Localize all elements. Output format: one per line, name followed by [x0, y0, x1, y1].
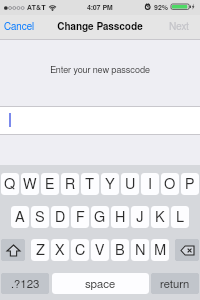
staticText: P [185, 177, 195, 192]
button[interactable]: D [51, 206, 69, 228]
staticText: J [136, 210, 144, 225]
button[interactable]: J [131, 206, 149, 228]
button[interactable]: T [81, 173, 99, 195]
staticText: I [148, 177, 153, 192]
button[interactable]: N [131, 239, 149, 261]
staticText: C [75, 243, 86, 258]
staticText: space [85, 279, 116, 290]
staticText: Z [36, 243, 45, 258]
button[interactable]: P [181, 173, 199, 195]
button[interactable]: space [52, 273, 149, 294]
staticText: D [55, 210, 66, 225]
button[interactable]: V [91, 239, 109, 261]
button[interactable]: W [21, 173, 39, 195]
staticText: E [45, 177, 55, 192]
button[interactable]: Shift [1, 239, 25, 261]
staticText: O [164, 177, 176, 192]
button[interactable]: .?123 [1, 273, 49, 294]
button[interactable]: S [31, 206, 49, 228]
staticText: L [176, 210, 185, 225]
button[interactable]: Z [31, 239, 49, 261]
staticText: return [160, 279, 190, 290]
staticText: X [55, 243, 65, 258]
button[interactable]: Y [101, 173, 119, 195]
staticText: A [15, 210, 25, 225]
button[interactable]: G [91, 206, 109, 228]
button[interactable]: Next [169, 15, 189, 39]
button[interactable]: U [121, 173, 139, 195]
staticText: B [115, 243, 125, 258]
staticText: V [95, 243, 105, 258]
staticText: T [85, 177, 95, 192]
button[interactable]: H [111, 206, 129, 228]
button[interactable]: C [71, 239, 89, 261]
staticText: 4:07 PM [0, 4, 200, 11]
button[interactable]: R [61, 173, 79, 195]
staticText: W [23, 177, 37, 192]
staticText: AT&T [27, 4, 46, 11]
staticText: Cancel [4, 22, 35, 32]
staticText: S [35, 210, 45, 225]
staticText: U [125, 177, 136, 192]
button[interactable]: L [171, 206, 189, 228]
staticText: Enter your new passcode [0, 66, 200, 75]
button[interactable]: F [71, 206, 89, 228]
button[interactable] [0, 107, 200, 134]
button[interactable]: I [141, 173, 159, 195]
button[interactable]: X [51, 239, 69, 261]
button[interactable]: return [151, 273, 199, 294]
staticText: K [155, 210, 165, 225]
staticText: F [76, 210, 85, 225]
staticText: M [154, 243, 167, 258]
staticText: G [94, 210, 106, 225]
button[interactable]: K [151, 206, 169, 228]
staticText: H [115, 210, 126, 225]
button[interactable]: Backspace [175, 239, 199, 261]
staticText: Q [4, 177, 16, 192]
staticText: R [65, 177, 76, 192]
button[interactable]: Cancel [4, 15, 35, 39]
button[interactable]: O [161, 173, 179, 195]
button[interactable]: E [41, 173, 59, 195]
button[interactable]: M [151, 239, 169, 261]
staticText: Y [105, 177, 115, 192]
button[interactable]: Q [1, 173, 19, 195]
staticText: .?123 [11, 279, 40, 290]
button[interactable]: A [11, 206, 29, 228]
button[interactable]: B [111, 239, 129, 261]
staticText: N [135, 243, 146, 258]
staticText: Next [169, 22, 189, 32]
staticText: Change Passcode [0, 22, 200, 32]
staticText: 92% [154, 4, 169, 11]
